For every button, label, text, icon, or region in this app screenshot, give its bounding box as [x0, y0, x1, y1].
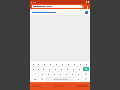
- button[interactable]: More options: [85, 5, 89, 9]
- button[interactable]: Backspace: [82, 72, 89, 76]
- button[interactable]: [32, 5, 82, 8]
- button[interactable]: Period: [75, 77, 81, 81]
- button[interactable]: [77, 67, 82, 71]
- button[interactable]: [42, 62, 47, 66]
- button[interactable]: [36, 67, 40, 71]
- button[interactable]: [31, 67, 35, 71]
- button[interactable]: [64, 72, 69, 76]
- button[interactable]: Bookmark: [30, 9, 90, 15]
- button[interactable]: [72, 62, 77, 66]
- button[interactable]: [40, 72, 45, 76]
- button[interactable]: [58, 72, 63, 76]
- button[interactable]: [36, 62, 41, 66]
- button[interactable]: [54, 62, 59, 66]
- button[interactable]: [66, 62, 71, 66]
- button[interactable]: Enter: [83, 67, 89, 71]
- button[interactable]: [70, 72, 75, 76]
- button[interactable]: [46, 72, 51, 76]
- button[interactable]: [59, 67, 64, 71]
- button[interactable]: [52, 72, 57, 76]
- button[interactable]: [47, 67, 52, 71]
- button[interactable]: Go: [82, 77, 89, 81]
- button[interactable]: [84, 62, 89, 66]
- button[interactable]: [31, 62, 35, 66]
- button[interactable]: [60, 62, 65, 66]
- button[interactable]: Emoji: [39, 77, 45, 81]
- button[interactable]: [71, 67, 76, 71]
- button[interactable]: Search: [81, 5, 85, 9]
- button[interactable]: [76, 72, 81, 76]
- button[interactable]: Bookmark: [85, 11, 88, 14]
- button[interactable]: Symbols: [31, 77, 38, 81]
- button[interactable]: [65, 67, 70, 71]
- button[interactable]: [78, 62, 83, 66]
- button[interactable]: [53, 67, 58, 71]
- button[interactable]: Shift: [31, 72, 39, 76]
- button[interactable]: Space: [46, 77, 74, 81]
- button[interactable]: [41, 67, 46, 71]
- button[interactable]: [48, 62, 53, 66]
